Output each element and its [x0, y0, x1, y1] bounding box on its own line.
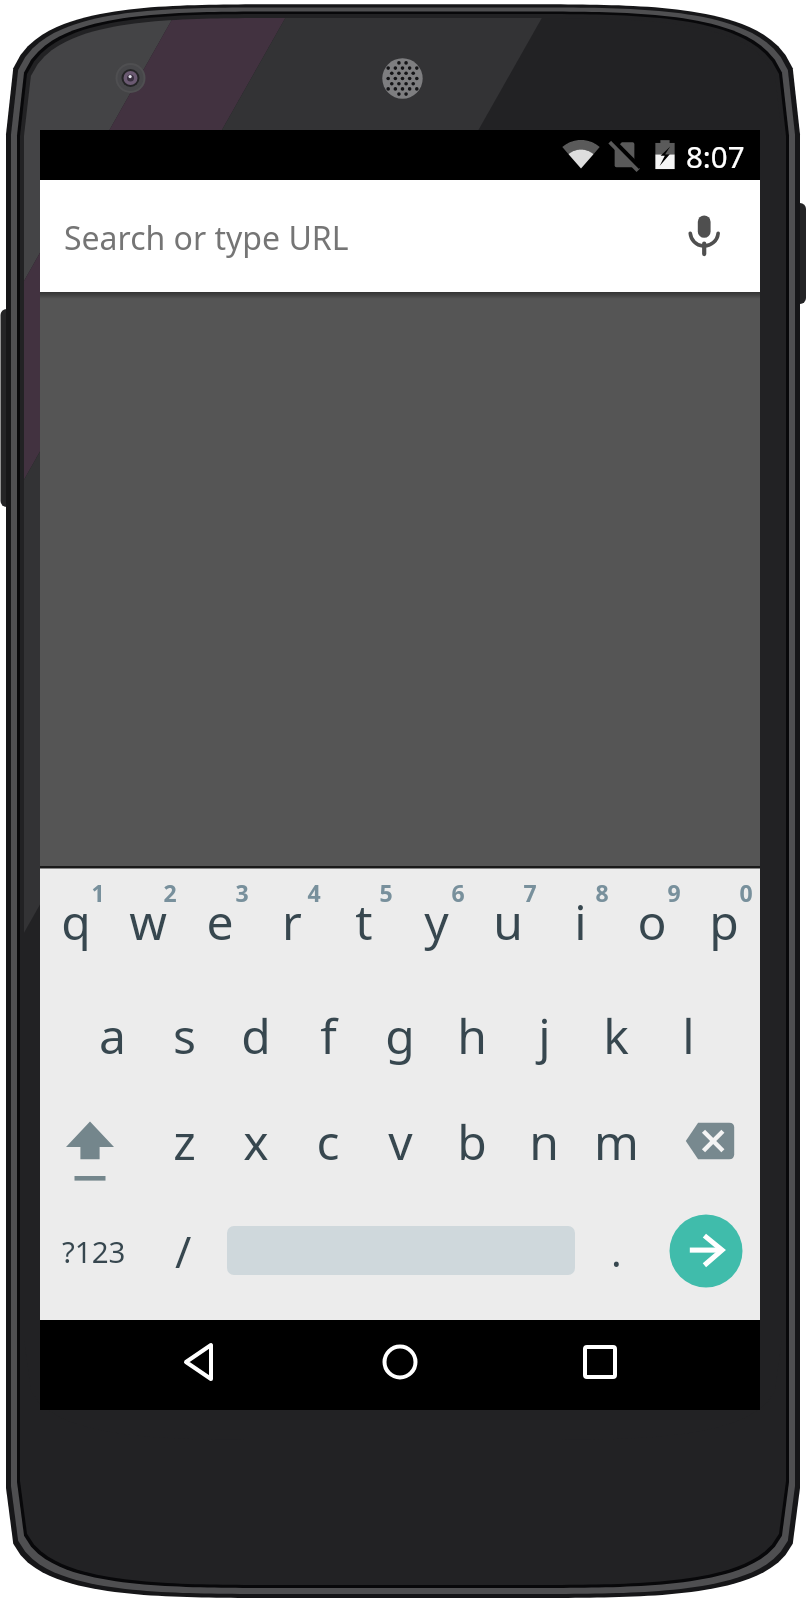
button[interactable]: Search or type URL: [40, 180, 760, 295]
staticText: 4: [307, 877, 321, 907]
button[interactable]: f: [292, 990, 364, 1080]
button[interactable]: e: [184, 872, 256, 970]
staticText: s: [173, 1003, 196, 1068]
button[interactable]: Go: [669, 1214, 743, 1288]
button[interactable]: t: [328, 872, 400, 970]
staticText: g: [385, 1003, 415, 1068]
button[interactable]: Backspace: [665, 1096, 755, 1196]
button[interactable]: Recent apps: [559, 1322, 641, 1404]
staticText: /: [175, 1221, 192, 1281]
button[interactable]: a: [76, 990, 148, 1080]
button[interactable]: v: [364, 1096, 436, 1186]
staticText: 8: [595, 877, 609, 907]
button[interactable]: l: [652, 990, 724, 1080]
staticText: z: [173, 1109, 196, 1174]
button[interactable]: c: [292, 1096, 364, 1186]
button[interactable]: b: [436, 1096, 508, 1186]
staticText: w: [129, 889, 167, 954]
button[interactable]: g: [364, 990, 436, 1080]
staticText: 8:07: [686, 136, 745, 174]
staticText: 0: [739, 877, 753, 907]
staticText: i: [574, 889, 587, 954]
button[interactable]: m: [580, 1096, 652, 1186]
staticText: l: [682, 1003, 695, 1068]
button[interactable]: n: [508, 1096, 580, 1186]
button[interactable]: u: [472, 872, 544, 970]
button[interactable]: /: [147, 1205, 219, 1297]
button[interactable]: q: [40, 872, 112, 970]
button[interactable]: h: [436, 990, 508, 1080]
staticText: t: [355, 889, 373, 954]
staticText: h: [457, 1003, 487, 1068]
button[interactable]: i: [544, 872, 616, 970]
button[interactable]: k: [580, 990, 652, 1080]
staticText: y: [424, 889, 449, 954]
staticText: v: [388, 1109, 413, 1174]
button[interactable]: Shift: [48, 1096, 138, 1196]
button[interactable]: y: [400, 872, 472, 970]
button[interactable]: p: [688, 872, 760, 970]
button[interactable]: Home: [359, 1322, 441, 1404]
button[interactable]: o: [616, 872, 688, 970]
staticText: j: [538, 1003, 551, 1068]
button[interactable]: .: [580, 1205, 652, 1297]
staticText: 2: [163, 877, 177, 907]
staticText: a: [99, 1003, 126, 1068]
button[interactable]: w: [112, 872, 184, 970]
button[interactable]: j: [508, 990, 580, 1080]
staticText: p: [709, 889, 739, 954]
button[interactable]: Voice search: [672, 200, 738, 266]
staticText: n: [529, 1109, 559, 1174]
staticText: b: [457, 1109, 487, 1174]
button[interactable]: ?123: [40, 1205, 148, 1297]
button[interactable]: x: [220, 1096, 292, 1186]
staticText: 1: [91, 877, 105, 907]
staticText: x: [243, 1109, 269, 1174]
button[interactable]: z: [148, 1096, 220, 1186]
staticText: q: [61, 889, 91, 954]
staticText: o: [637, 889, 667, 954]
staticText: 7: [523, 877, 537, 907]
button[interactable]: d: [220, 990, 292, 1080]
staticText: 9: [667, 877, 681, 907]
staticText: e: [206, 889, 234, 954]
staticText: 5: [379, 877, 393, 907]
staticText: 3: [235, 877, 249, 907]
staticText: m: [594, 1109, 639, 1174]
staticText: 6: [451, 877, 465, 907]
staticText: f: [320, 1003, 337, 1068]
button[interactable]: r: [256, 872, 328, 970]
staticText: k: [603, 1003, 629, 1068]
staticText: Search or type URL: [64, 216, 349, 260]
staticText: u: [493, 889, 523, 954]
staticText: d: [241, 1003, 271, 1068]
staticText: c: [316, 1109, 340, 1174]
button[interactable]: s: [148, 990, 220, 1080]
staticText: ?123: [62, 1231, 126, 1271]
staticText: r: [282, 889, 302, 954]
staticText: .: [611, 1224, 622, 1278]
button[interactable]: Back: [160, 1322, 242, 1404]
